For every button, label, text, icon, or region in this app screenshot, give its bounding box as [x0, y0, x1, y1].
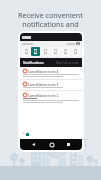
button[interactable]: Filter 1: [22, 47, 30, 56]
staticText: Cancellation note 4: [28, 69, 59, 73]
button[interactable]: Filter 5: [61, 47, 70, 56]
button[interactable]: Cancellation note 2: [20, 91, 82, 105]
staticText: Receive convenient notifications and rem…: [5, 10, 96, 39]
staticText: 1: [23, 132, 25, 136]
button[interactable]: Page 1: [26, 133, 29, 136]
staticText: Cancellation note 2: [28, 93, 59, 97]
button[interactable]: Filter 4: [51, 47, 60, 56]
button[interactable]: Filter 6: [71, 47, 80, 56]
button[interactable]: Home: [47, 140, 56, 149]
button[interactable]: Filter 2: [31, 47, 40, 56]
button[interactable]: Filter 3: [41, 47, 50, 56]
button[interactable]: Back: [29, 140, 38, 149]
staticText: Notifications: [23, 60, 44, 65]
button[interactable]: Mark all as read: [56, 61, 79, 65]
button[interactable]: Recent apps: [64, 140, 73, 149]
staticText: ···: [76, 69, 79, 73]
staticText: Cancellation note 3: [28, 82, 59, 86]
button[interactable]: Cancellation note 3: [20, 80, 82, 90]
button[interactable]: Cancellation note 4: [20, 67, 82, 79]
